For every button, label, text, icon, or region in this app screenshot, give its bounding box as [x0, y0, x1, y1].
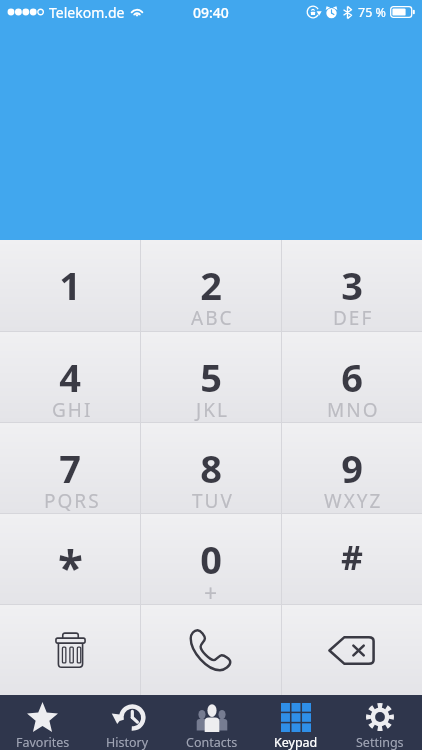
button[interactable]: 6: [281, 332, 422, 422]
staticText: PQRS: [44, 488, 101, 514]
button[interactable]: 1: [0, 240, 140, 331]
button[interactable]: 4: [0, 332, 140, 422]
staticText: 4: [59, 351, 81, 403]
staticText: Contacts: [186, 734, 238, 750]
staticText: *: [58, 536, 83, 599]
staticText: #: [341, 534, 363, 580]
button[interactable]: 5: [140, 332, 281, 422]
staticText: ABC: [191, 305, 234, 331]
button[interactable]: 3: [281, 240, 422, 331]
staticText: Favorites: [16, 734, 70, 750]
staticText: MNO: [327, 397, 380, 423]
staticText: History: [106, 734, 149, 750]
staticText: JKL: [196, 397, 229, 423]
staticText: 09:40: [193, 3, 229, 22]
staticText: Keypad: [274, 734, 318, 750]
staticText: 7: [59, 442, 81, 494]
staticText: 1: [59, 259, 81, 311]
staticText: 3: [341, 259, 363, 311]
staticText: 6: [341, 351, 363, 403]
staticText: 5: [200, 351, 222, 403]
button[interactable]: *: [0, 514, 140, 604]
button[interactable]: Settings: [338, 695, 422, 750]
staticText: 9: [341, 442, 363, 494]
button[interactable]: 0: [140, 514, 281, 604]
staticText: Settings: [356, 734, 404, 750]
button[interactable]: 9: [281, 423, 422, 513]
button[interactable]: Backspace: [281, 605, 422, 695]
staticText: 2: [200, 259, 222, 311]
staticText: Telekom.de: [49, 3, 125, 22]
staticText: DEF: [333, 305, 374, 331]
button[interactable]: Favorites: [0, 695, 85, 750]
staticText: GHI: [52, 397, 93, 423]
button[interactable]: 7: [0, 423, 140, 513]
button[interactable]: Contacts: [170, 695, 254, 750]
button[interactable]: Delete: [0, 605, 140, 695]
staticText: 8: [200, 442, 222, 494]
staticText: TUV: [192, 488, 234, 514]
staticText: 75 %: [358, 4, 386, 21]
button[interactable]: History: [85, 695, 170, 750]
button[interactable]: 8: [140, 423, 281, 513]
staticText: +: [204, 577, 218, 608]
staticText: WXYZ: [324, 488, 383, 514]
button[interactable]: #: [281, 514, 422, 604]
button[interactable]: Keypad: [254, 695, 338, 750]
staticText: 0: [200, 533, 222, 585]
button[interactable]: 2: [140, 240, 281, 331]
button[interactable]: Call: [140, 605, 281, 695]
